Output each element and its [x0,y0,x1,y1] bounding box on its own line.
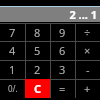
staticText: + [84,81,91,96]
button[interactable]: 7 [0,23,25,41]
staticText: 2 [34,62,41,77]
staticText: - [86,62,90,77]
button[interactable]: 2 [25,60,50,79]
button[interactable]: 1 [0,60,25,79]
button[interactable]: 5 [25,41,50,60]
button[interactable]: 4 [0,41,25,60]
button[interactable]: 9 [50,23,75,41]
button[interactable]: 8 [25,23,50,41]
button[interactable]: × [75,41,100,60]
staticText: ÷ [84,25,91,40]
button[interactable]: ÷ [75,23,100,41]
staticText: 9 [59,25,66,40]
button[interactable]: = [50,79,75,98]
staticText: 4 [9,43,16,58]
staticText: 7 [9,25,16,40]
staticText: 0/. [8,83,18,94]
staticText: 8 [34,25,41,40]
button[interactable]: - [75,60,100,79]
staticText: × [84,43,91,58]
staticText: = [59,81,66,96]
button[interactable]: + [75,79,100,98]
button[interactable]: 2 ... 1 [0,7,100,22]
button[interactable]: C [25,79,50,98]
staticText: C [34,81,42,96]
button[interactable]: 3 [50,60,75,79]
button[interactable]: 0/. [0,79,25,98]
staticText: 1 [9,62,16,77]
staticText: 3 [59,62,66,77]
button[interactable]: 6 [50,41,75,60]
staticText: 2 ... 1 [69,7,97,22]
staticText: 6 [59,43,66,58]
staticText: 5 [34,43,41,58]
